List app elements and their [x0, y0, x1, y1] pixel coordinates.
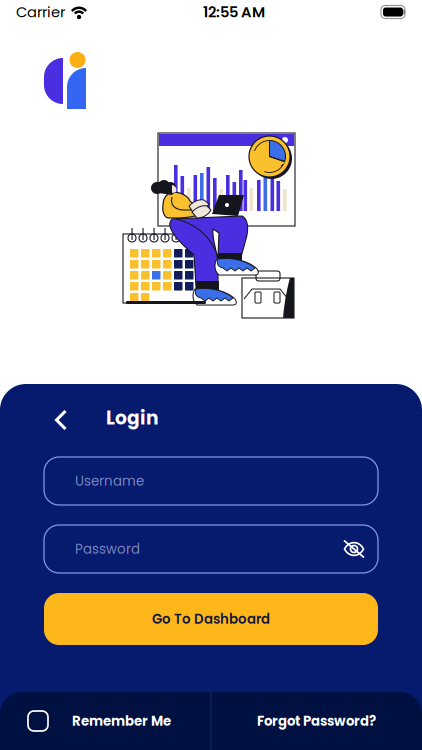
staticText: Forgot Password? — [257, 712, 376, 730]
button[interactable]: Go To Dashboard — [0, 384, 334, 436]
staticText: Username — [75, 472, 144, 490]
staticText: Password — [75, 540, 140, 558]
staticText: Remember Me — [72, 712, 171, 730]
button[interactable]: Username — [0, 384, 334, 432]
button[interactable]: Back — [0, 384, 34, 418]
staticText: Carrier — [16, 2, 65, 22]
button[interactable]: Password — [0, 384, 334, 432]
button[interactable]: Forgot Password? — [211, 692, 422, 750]
staticText: Go To Dashboard — [152, 610, 270, 628]
staticText: Login — [106, 405, 159, 431]
button[interactable]: Remember Me — [0, 692, 211, 750]
staticText: 12:55 AM — [203, 2, 265, 22]
